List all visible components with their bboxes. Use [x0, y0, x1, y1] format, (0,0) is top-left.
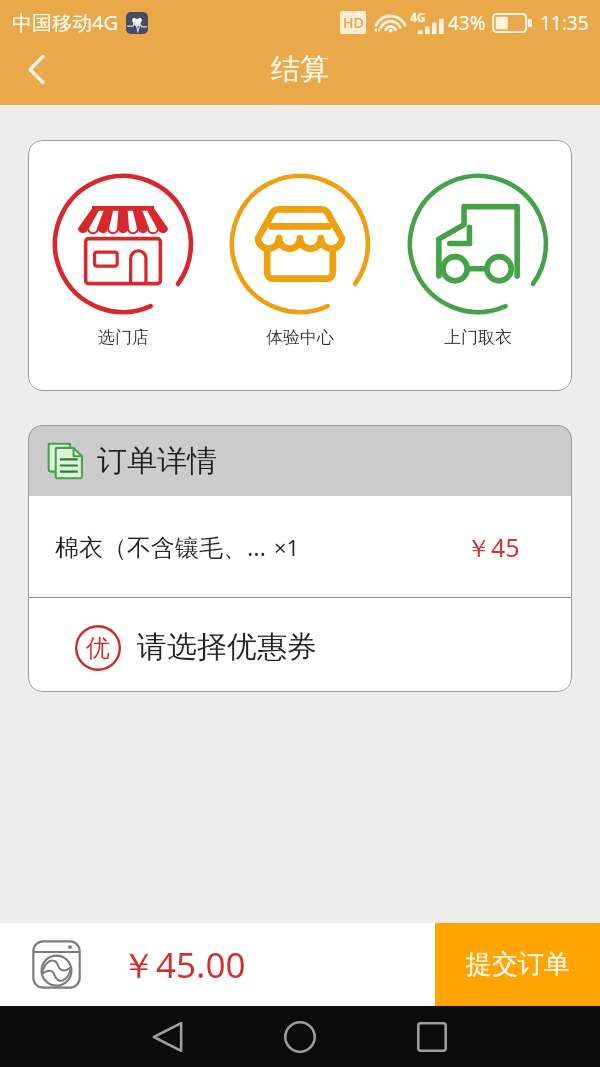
button[interactable]: 棉衣（不含镶毛、…	[28, 496, 572, 597]
staticText: 提交订单	[466, 948, 570, 981]
staticText: 体验中心	[266, 327, 334, 348]
button[interactable]: Back	[0, 45, 72, 105]
button[interactable]: 优	[28, 598, 572, 692]
staticText: 中国移动4G	[12, 9, 118, 36]
staticText: 订单详情	[97, 442, 217, 480]
button[interactable]: 提交订单	[435, 923, 600, 1006]
staticText: ×1	[274, 532, 300, 562]
button[interactable]: Recents	[398, 1006, 466, 1067]
staticText: 上门取衣	[444, 327, 512, 348]
button[interactable]: Home	[266, 1006, 334, 1067]
staticText: 优	[86, 633, 110, 663]
button[interactable]: 上门取衣	[393, 140, 563, 348]
button[interactable]: 选门店	[38, 140, 208, 348]
button[interactable]: Back	[133, 1006, 201, 1067]
staticText: 请选择优惠券	[137, 628, 317, 666]
staticText: 结算	[271, 51, 329, 88]
button[interactable]: 体验中心	[215, 140, 385, 348]
staticText: 棉衣（不含镶毛、…	[55, 530, 266, 563]
staticText: ￥45.00	[121, 941, 246, 989]
staticText: ￥45	[466, 530, 520, 564]
staticText: HD	[343, 13, 364, 32]
staticText: 11:35	[540, 10, 589, 36]
staticText: 选门店	[98, 327, 149, 348]
staticText: 4G	[410, 9, 426, 25]
staticText: 43%	[448, 10, 486, 36]
